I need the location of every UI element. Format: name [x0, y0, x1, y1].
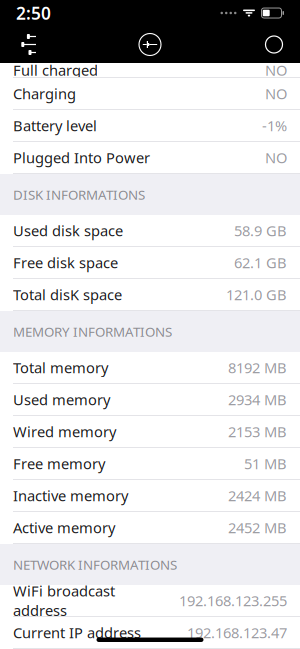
- staticText: 2424 MB: [228, 486, 287, 505]
- staticText: 192.168.123.255: [179, 591, 287, 610]
- button[interactable]: Plugged Into Power: [0, 142, 300, 174]
- staticText: NO: [265, 60, 287, 80]
- staticText: WiFi broadcast address: [13, 581, 115, 620]
- button[interactable]: Battery level: [0, 110, 300, 142]
- button[interactable]: Charging: [0, 78, 300, 110]
- button[interactable]: Used memory: [0, 384, 300, 416]
- staticText: Free memory: [13, 454, 105, 473]
- button[interactable]: Monitor: [128, 26, 172, 63]
- staticText: 192.168.123.47: [187, 623, 287, 642]
- button[interactable]: Active memory: [0, 512, 300, 544]
- button[interactable]: Total disK space: [0, 279, 300, 311]
- staticText: 2:50: [16, 1, 51, 24]
- button[interactable]: Wired memory: [0, 416, 300, 448]
- button[interactable]: Refresh: [252, 26, 296, 63]
- staticText: Free disk space: [13, 253, 118, 272]
- staticText: -1%: [262, 116, 287, 135]
- button[interactable]: Filters: [4, 26, 48, 63]
- button[interactable]: WiFi broadcast address: [0, 585, 300, 617]
- staticText: NETWORK INFORMATIONS: [13, 556, 177, 573]
- button[interactable]: Free disk space: [0, 247, 300, 279]
- staticText: Charging: [13, 84, 76, 103]
- staticText: NO: [265, 84, 287, 103]
- button[interactable]: Free memory: [0, 448, 300, 480]
- staticText: 121.0 GB: [226, 285, 287, 304]
- staticText: MEMORY INFORMATIONS: [13, 323, 172, 340]
- staticText: Total disK space: [13, 285, 122, 304]
- staticText: Plugged Into Power: [13, 148, 150, 167]
- staticText: Battery level: [13, 116, 97, 135]
- button[interactable]: Inactive memory: [0, 480, 300, 512]
- button[interactable]: Used disk space: [0, 215, 300, 247]
- staticText: Full charged: [13, 60, 98, 80]
- staticText: Total memory: [13, 358, 108, 377]
- staticText: 51 MB: [244, 454, 287, 473]
- staticText: 2452 MB: [228, 518, 287, 537]
- staticText: Active memory: [13, 518, 115, 537]
- button[interactable]: Current IP address: [0, 617, 300, 649]
- staticText: 8192 MB: [228, 358, 287, 377]
- staticText: 62.1 GB: [234, 253, 287, 272]
- staticText: Inactive memory: [13, 486, 128, 505]
- staticText: DISK INFORMATIONS: [13, 186, 145, 203]
- staticText: 2934 MB: [228, 390, 287, 409]
- staticText: Wired memory: [13, 422, 116, 441]
- staticText: 2153 MB: [228, 422, 287, 441]
- staticText: NO: [265, 148, 287, 167]
- staticText: Used memory: [13, 390, 110, 409]
- staticText: Used disk space: [13, 221, 123, 240]
- button[interactable]: Total memory: [0, 352, 300, 384]
- staticText: Current IP address: [13, 623, 141, 642]
- staticText: 58.9 GB: [234, 221, 287, 240]
